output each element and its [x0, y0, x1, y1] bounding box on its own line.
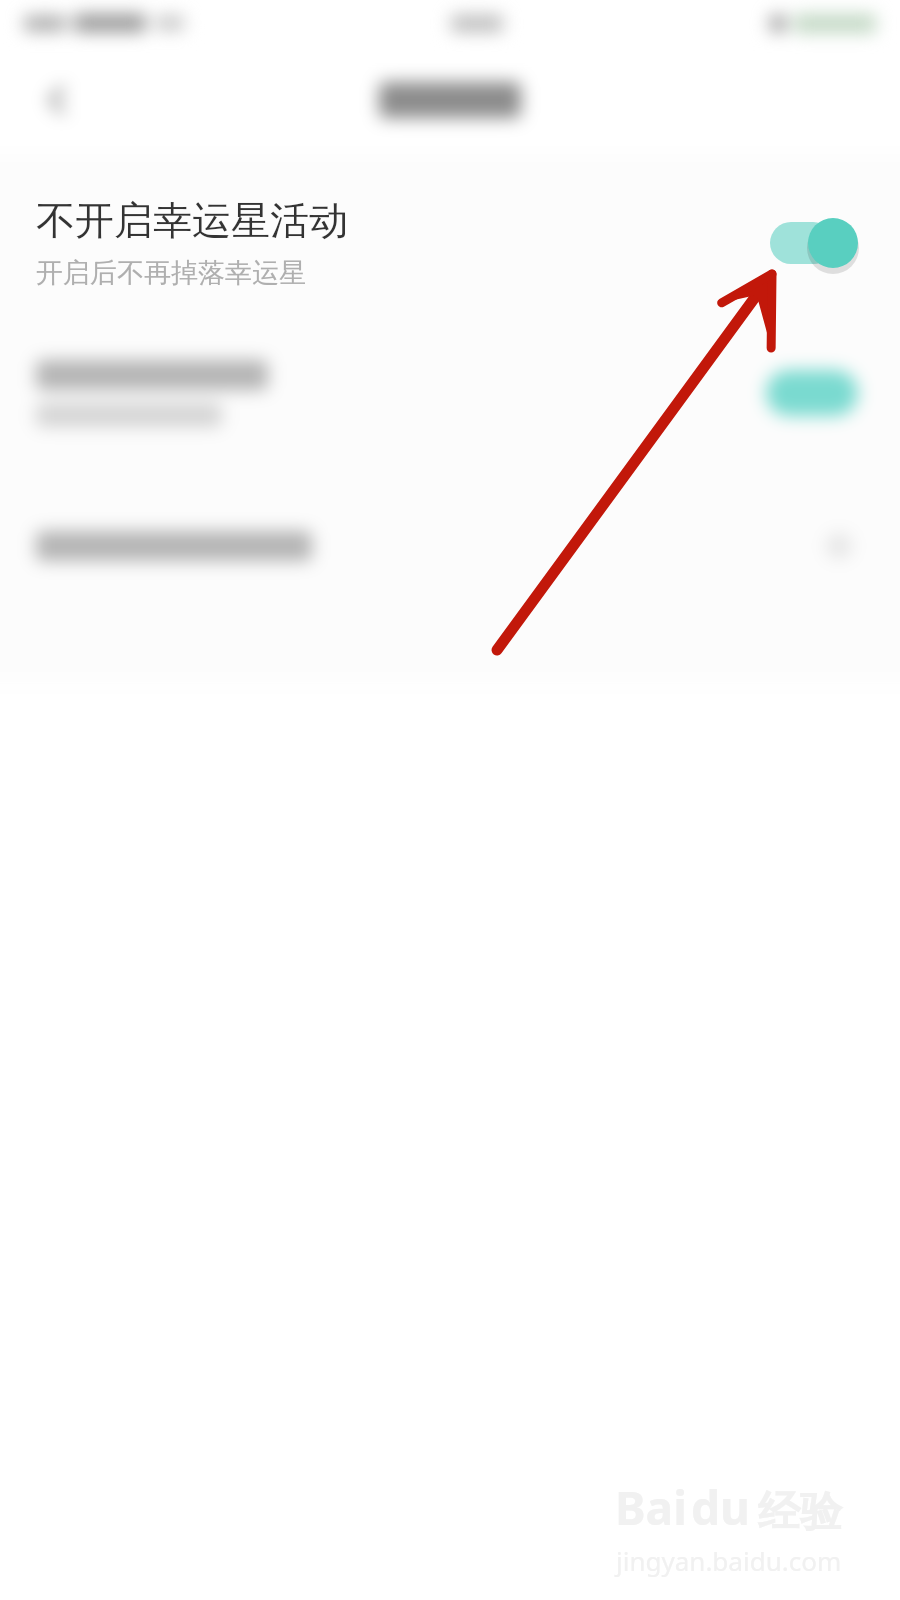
staticText: 不开启幸运星活动 — [36, 196, 348, 245]
staticText: 经验 — [758, 1486, 842, 1539]
staticText: jingyan.baidu.com — [616, 1543, 842, 1578]
staticText: 开启后不再掉落幸运星 — [36, 256, 306, 290]
staticText: Bai — [615, 1476, 687, 1539]
staticText: du — [691, 1476, 750, 1539]
button[interactable]: 不开启幸运星活动 — [0, 168, 900, 318]
button[interactable]: 关闭幸运星活动开关，已开启 — [768, 215, 864, 271]
